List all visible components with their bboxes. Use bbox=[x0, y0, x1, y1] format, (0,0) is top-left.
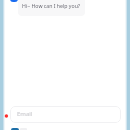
button[interactable]: Previous message bbox=[10, 0, 18, 2]
button[interactable]: Email bbox=[10, 106, 121, 123]
button[interactable]: Submit bbox=[11, 128, 19, 130]
staticText: Hi~ How can I help you? bbox=[22, 2, 81, 9]
staticText: Email bbox=[17, 110, 33, 118]
button[interactable]: Hi~ How can I help you? bbox=[18, 0, 85, 16]
